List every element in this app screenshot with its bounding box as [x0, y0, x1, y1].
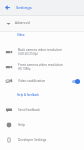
staticText: Back camera video resolution — [18, 48, 63, 52]
staticText: Settings — [16, 5, 32, 10]
staticText: Video — [17, 33, 25, 37]
staticText: Developer Settings — [18, 138, 47, 142]
button[interactable]: Send feedback — [0, 103, 84, 117]
staticText: Advanced — [15, 21, 30, 25]
staticText: Help — [18, 123, 25, 127]
staticText: HD 1080p — [18, 67, 31, 71]
staticText: Send feedback — [18, 108, 40, 112]
staticText: Help & feedback — [17, 93, 39, 97]
button[interactable]: Advanced — [0, 16, 84, 30]
staticText: UHD 4K (2160p) — [18, 52, 38, 56]
button[interactable]: Front camera video resolution — [0, 59, 84, 74]
staticText: Video stabilization — [18, 79, 46, 83]
button[interactable]: Help — [0, 118, 84, 132]
button[interactable]: Back — [2, 2, 13, 13]
button[interactable]: Video stabilization — [0, 74, 84, 88]
staticText: Front camera video resolution — [18, 63, 63, 67]
button[interactable]: Developer Settings — [0, 133, 84, 147]
button[interactable]: Back camera video resolution — [0, 44, 84, 59]
